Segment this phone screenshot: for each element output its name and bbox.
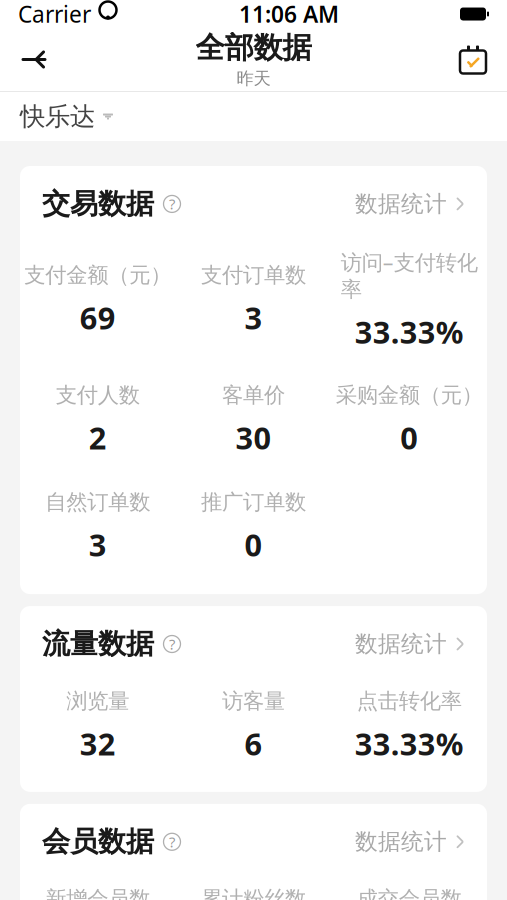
staticText: Carrier: [18, 0, 91, 29]
staticText: 3: [89, 524, 107, 565]
staticText: 数据统计: [355, 190, 447, 218]
staticText: 6: [244, 723, 262, 764]
staticText: 30: [235, 417, 271, 458]
staticText: 自然订单数: [45, 489, 150, 515]
staticText: 访客量: [222, 688, 285, 714]
staticText: 会员数据: [42, 825, 154, 859]
staticText: 支付订单数: [201, 262, 306, 288]
staticText: ?: [169, 832, 175, 851]
staticText: 浏览量: [66, 688, 129, 714]
staticText: 推广订单数: [201, 489, 306, 515]
staticText: 快乐达: [20, 101, 95, 132]
staticText: 访问–支付转化率: [341, 248, 478, 302]
button[interactable]: Back: [8, 33, 60, 85]
staticText: 32: [80, 723, 116, 764]
staticText: 点击转化率: [357, 688, 462, 714]
button[interactable]: 数据统计: [355, 186, 465, 222]
button[interactable]: 数据统计: [355, 824, 465, 860]
staticText: 新增会员数: [45, 886, 150, 900]
button[interactable]: 快乐达: [20, 87, 113, 146]
staticText: 采购金额（元）: [336, 382, 483, 408]
staticText: 33.33%: [355, 723, 464, 764]
staticText: 客单价: [222, 382, 285, 408]
staticText: 3: [244, 297, 262, 338]
staticText: 11:06 AM: [239, 0, 339, 29]
staticText: 成交会员数: [357, 886, 462, 900]
staticText: 昨天: [236, 68, 270, 89]
staticText: 支付金额（元）: [24, 262, 171, 288]
staticText: 流量数据: [42, 627, 154, 661]
button[interactable]: 数据统计: [355, 626, 465, 662]
staticText: 支付人数: [56, 382, 140, 408]
staticText: 数据统计: [355, 630, 447, 658]
staticText: ?: [169, 634, 175, 654]
staticText: 交易数据: [42, 187, 154, 221]
staticText: 69: [80, 297, 116, 338]
staticText: 数据统计: [355, 828, 447, 856]
staticText: 全部数据: [195, 30, 311, 66]
staticText: 0: [400, 417, 418, 458]
button[interactable]: Select date: [447, 33, 499, 85]
staticText: 2: [89, 417, 107, 458]
staticText: 33.33%: [355, 311, 464, 352]
staticText: 0: [244, 524, 262, 565]
staticText: 累计粉丝数: [201, 886, 306, 900]
staticText: ?: [169, 194, 175, 214]
